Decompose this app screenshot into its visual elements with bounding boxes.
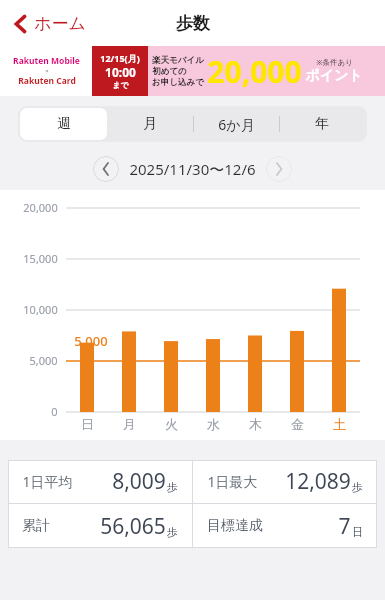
staticText: 1日最大: [207, 472, 258, 491]
staticText: 20,000: [207, 51, 302, 92]
button[interactable]: 楽天モバイル広告: [0, 46, 385, 96]
staticText: 金: [291, 416, 304, 432]
staticText: 月: [143, 115, 157, 133]
staticText: 5,000: [29, 353, 58, 368]
button[interactable]: ホーム: [10, 9, 90, 38]
staticText: ×: [45, 67, 49, 75]
button[interactable]: 1日最大: [193, 460, 377, 503]
button[interactable]: 月: [107, 108, 193, 140]
staticText: 水: [207, 416, 220, 432]
staticText: 10:00: [105, 64, 136, 80]
staticText: 週: [57, 115, 71, 133]
staticText: 2025/11/30〜12/6: [129, 159, 256, 179]
button[interactable]: 次の週: [266, 156, 292, 182]
staticText: 5,000: [74, 332, 108, 350]
staticText: 日: [352, 525, 363, 539]
staticText: 目標達成: [207, 517, 263, 535]
staticText: 火: [165, 416, 178, 432]
staticText: 年: [315, 115, 329, 133]
staticText: 歩数: [176, 13, 210, 34]
staticText: 15,000: [23, 251, 58, 266]
staticText: 8,009: [112, 467, 166, 496]
button[interactable]: 累計: [8, 504, 192, 548]
staticText: 木: [249, 416, 262, 432]
staticText: 月: [123, 416, 136, 432]
staticText: 歩: [167, 480, 178, 494]
staticText: 12/15(月): [100, 52, 140, 64]
staticText: Rakuten Card: [18, 75, 76, 87]
staticText: 土: [333, 416, 346, 432]
staticText: 6か月: [218, 115, 255, 134]
staticText: 楽天モバイル: [152, 55, 204, 66]
staticText: ※条件あり: [316, 57, 353, 67]
button[interactable]: 目標達成: [193, 504, 377, 548]
button[interactable]: 週: [20, 108, 107, 140]
staticText: まで: [112, 80, 129, 90]
staticText: 日: [81, 416, 94, 432]
staticText: Rakuten Mobile: [13, 55, 80, 67]
staticText: ホーム: [34, 13, 86, 34]
button[interactable]: 年: [279, 108, 365, 140]
staticText: 56,065: [100, 512, 166, 541]
staticText: ポイント: [305, 67, 363, 85]
staticText: 初めての: [152, 66, 187, 77]
staticText: 累計: [22, 517, 50, 535]
staticText: 1日平均: [22, 472, 73, 491]
staticText: 12,089: [285, 467, 351, 496]
staticText: 7: [338, 512, 351, 541]
button[interactable]: 6か月: [193, 108, 279, 140]
staticText: 0: [51, 404, 58, 419]
staticText: 20,000: [23, 200, 58, 215]
staticText: お申し込みで: [152, 77, 204, 88]
staticText: 10,000: [23, 302, 58, 317]
staticText: 歩: [167, 525, 178, 539]
button[interactable]: 1日平均: [8, 460, 192, 503]
staticText: 歩: [352, 480, 363, 494]
button[interactable]: 前の週: [93, 156, 119, 182]
